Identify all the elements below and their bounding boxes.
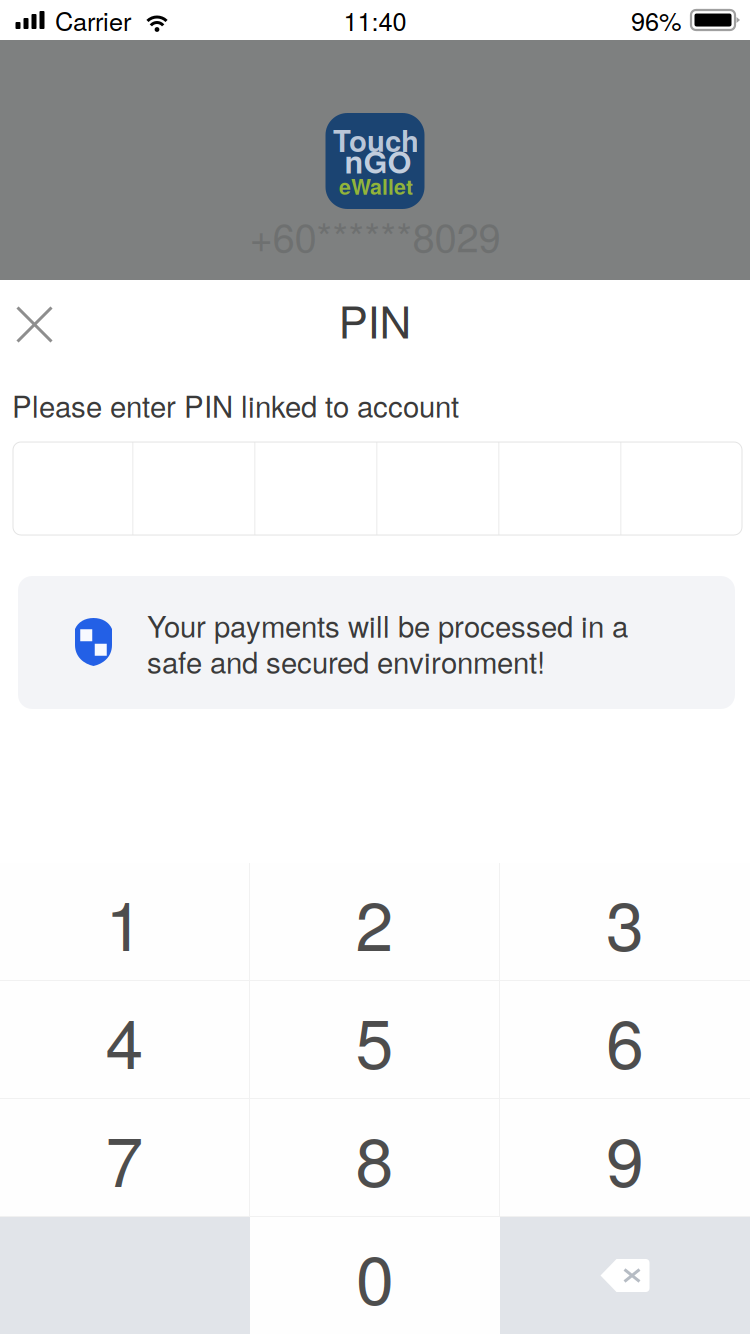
button[interactable]: 0 (250, 1217, 500, 1334)
staticText: Please enter PIN linked to account (12, 384, 459, 426)
button[interactable]: 1 (0, 863, 249, 980)
staticText: 1 (105, 873, 143, 970)
button[interactable]: 9 (500, 1099, 750, 1216)
button[interactable]: 5 (250, 981, 499, 1098)
button[interactable]: Close (0, 280, 71, 369)
staticText: 7 (105, 1109, 143, 1206)
staticText: 9 (606, 1109, 644, 1206)
button[interactable]: Delete (500, 1217, 750, 1334)
button[interactable]: 3 (500, 863, 750, 980)
staticText: safe and secured environment! (147, 640, 545, 682)
button[interactable]: 2 (250, 863, 499, 980)
staticText: 11:40 (343, 2, 406, 38)
staticText: 8 (355, 1109, 393, 1206)
staticText: eWallet (339, 171, 413, 201)
button[interactable]: 7 (0, 1099, 249, 1216)
staticText: Carrier (55, 2, 131, 38)
staticText: 5 (355, 991, 393, 1088)
staticText: 6 (606, 991, 644, 1088)
button[interactable]: 8 (250, 1099, 499, 1216)
staticText: nGO (344, 139, 411, 183)
staticText: 3 (606, 873, 644, 970)
button[interactable]: 6 (500, 981, 750, 1098)
staticText: 2 (355, 873, 393, 970)
staticText: 96% (631, 2, 682, 38)
staticText: Your payments will be processed in a (147, 604, 628, 646)
button[interactable]: 4 (0, 981, 249, 1098)
staticText: Touch (333, 119, 419, 161)
staticText: +60******8029 (249, 206, 500, 264)
staticText: 4 (105, 991, 143, 1088)
staticText: 0 (356, 1227, 394, 1324)
staticText: PIN (338, 288, 411, 351)
